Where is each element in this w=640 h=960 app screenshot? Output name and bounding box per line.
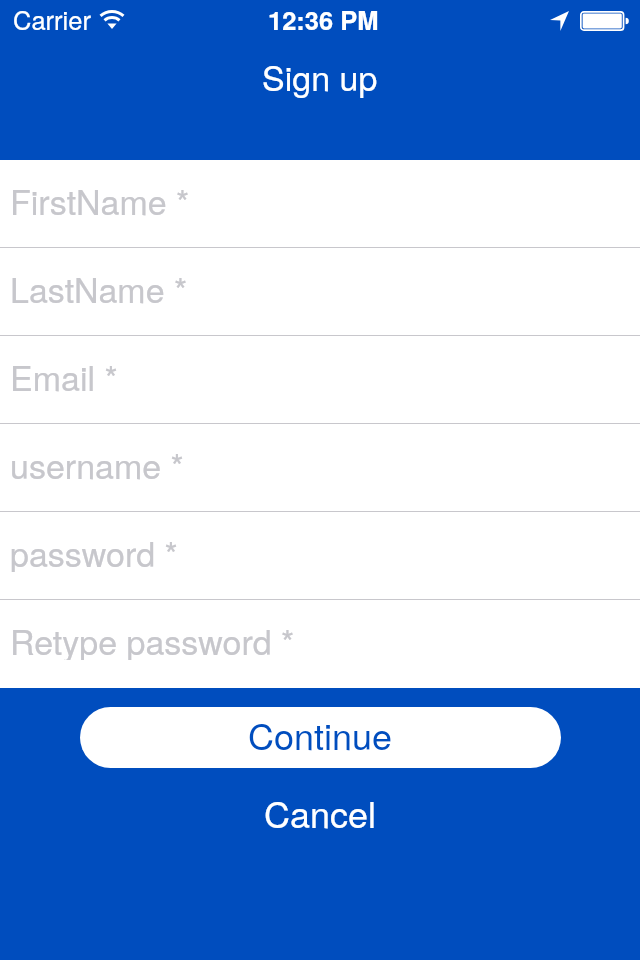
staticText: Sign up [262, 52, 378, 100]
staticText: FirstName * [10, 176, 190, 220]
staticText: password * [10, 528, 178, 572]
other: Wi-Fi [99, 10, 125, 29]
staticText: Carrier [13, 1, 91, 38]
other: Location services [550, 11, 569, 31]
button[interactable]: FirstName * [0, 160, 640, 248]
staticText: Cancel [264, 787, 377, 839]
button[interactable]: Retype password * [0, 600, 640, 688]
staticText: LastName * [10, 264, 188, 308]
button[interactable]: Continue [80, 707, 561, 768]
button[interactable]: password * [0, 512, 640, 600]
staticText: 12:36 PM [268, 1, 379, 38]
staticText: Email * [10, 352, 118, 396]
staticText: Retype password * [10, 616, 295, 660]
staticText: Continue [248, 709, 393, 761]
button[interactable]: Cancel [240, 787, 400, 839]
button[interactable]: Email * [0, 336, 640, 424]
button[interactable]: username * [0, 424, 640, 512]
staticText: username * [10, 440, 184, 484]
other: Battery full [580, 11, 628, 31]
button[interactable]: LastName * [0, 248, 640, 336]
